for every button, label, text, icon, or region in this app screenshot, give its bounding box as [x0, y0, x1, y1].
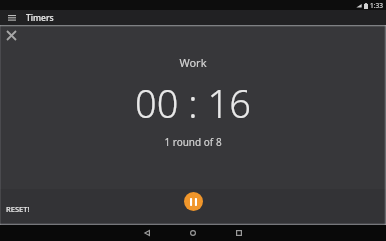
button[interactable]: Menu — [5, 11, 18, 24]
button[interactable]: Recents — [226, 225, 252, 241]
button[interactable]: Pause — [184, 192, 203, 211]
staticText: RESET! — [6, 204, 30, 214]
staticText: Work — [179, 55, 207, 70]
staticText: 1:33 — [370, 1, 383, 10]
button[interactable]: Back — [134, 225, 160, 241]
button[interactable]: Home — [180, 225, 206, 241]
staticText: Timers — [26, 12, 54, 24]
button[interactable]: Close — [2, 26, 20, 44]
staticText: 1 round of 8 — [164, 135, 222, 149]
staticText: 00 : 16 — [135, 77, 251, 129]
button[interactable]: RESET! — [3, 201, 33, 217]
